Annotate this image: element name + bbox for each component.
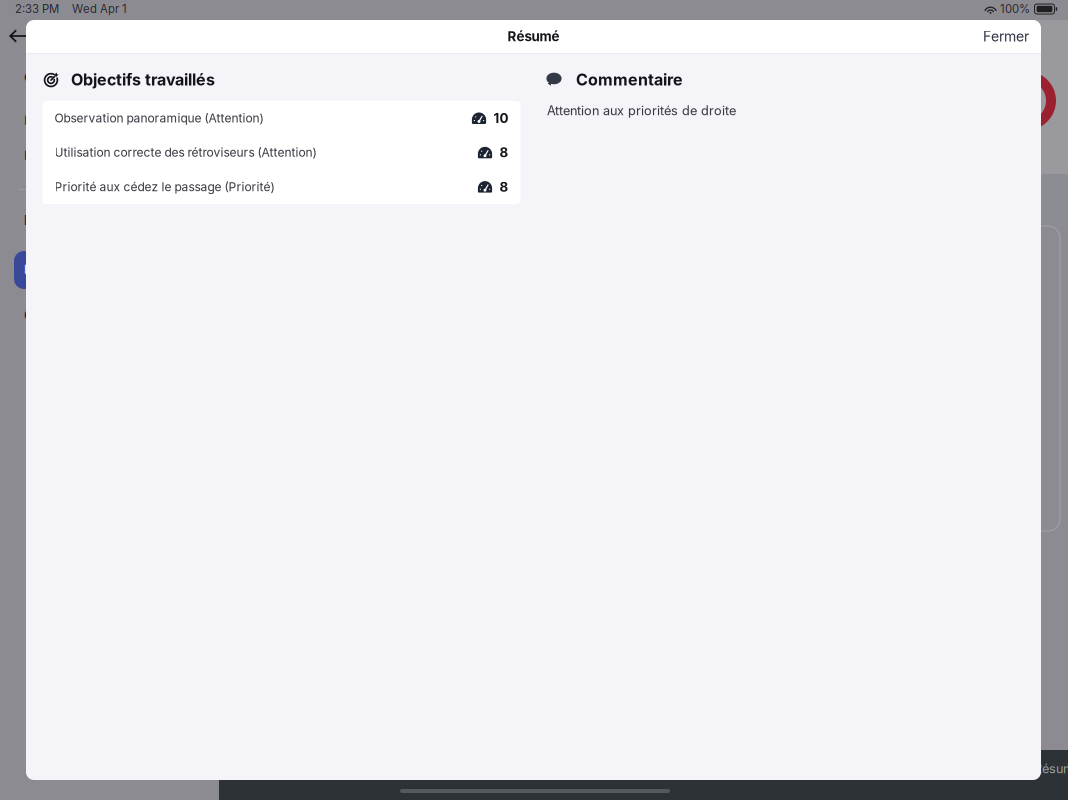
staticText: 100% [1000, 2, 1030, 16]
staticText: Leçon 4 — Ville [24, 113, 112, 127]
staticText: Cours de conduite [24, 70, 128, 84]
staticText: Priorité aux cédez le passage (Priorité) [54, 180, 274, 194]
staticText: Historique [24, 212, 92, 228]
staticText: Fermer [983, 28, 1029, 45]
staticText: 2:33 PM [15, 2, 59, 16]
staticText: Objectifs travaillés [71, 70, 215, 89]
staticText: Commentaire [576, 70, 683, 89]
button[interactable]: Fermer [971, 19, 1041, 54]
button[interactable]: Observation panoramique (Attention) [42, 101, 520, 135]
staticText: Évaluation continue [24, 148, 135, 162]
staticText: Résumé [507, 28, 559, 44]
staticText: Résumé de séance [24, 262, 133, 276]
staticText: Observation panoramique (Attention) [54, 111, 263, 125]
staticText: Objectifs [24, 307, 83, 323]
staticText: 10 [493, 110, 508, 126]
staticText: Résumé [1034, 761, 1068, 776]
staticText: Utilisation correcte des rétroviseurs (A… [54, 145, 316, 160]
staticText: Wed Apr 1 [72, 2, 127, 16]
staticText: 8 [499, 179, 508, 195]
button[interactable]: Priorité aux cédez le passage (Priorité) [42, 170, 520, 204]
staticText: Attention aux priorités de droite [547, 103, 736, 118]
button[interactable]: Utilisation correcte des rétroviseurs (A… [42, 135, 520, 170]
staticText: 8 [499, 144, 508, 160]
button[interactable]: Back [9, 28, 28, 44]
